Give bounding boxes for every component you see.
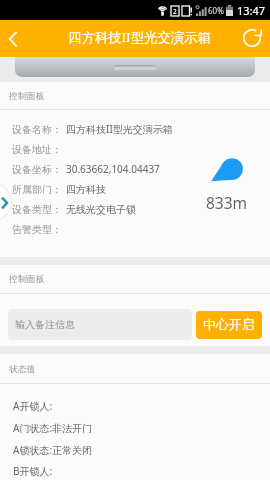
staticText: ： — [52, 163, 62, 176]
staticText: 30.63662,104.04437 — [66, 162, 160, 176]
staticText: 所属部门 — [12, 183, 52, 196]
staticText: 四方科技II型光交演示箱 — [66, 122, 173, 136]
staticText: 四方科技 — [66, 183, 106, 196]
staticText: ： — [52, 123, 62, 136]
button[interactable]: 输入备注信息 — [8, 309, 192, 340]
staticText: 设备类型 — [12, 203, 52, 216]
staticText: 设备名称 — [12, 123, 52, 136]
staticText: ： — [52, 223, 62, 236]
staticText: 设备坐标 — [12, 163, 52, 176]
staticText: 60% — [208, 5, 224, 16]
staticText: ： — [52, 183, 62, 196]
button[interactable]: Back — [0, 20, 34, 57]
staticText: 输入备注信息 — [15, 318, 75, 331]
staticText: 中心开启 — [203, 317, 255, 333]
staticText: 2 — [173, 7, 177, 16]
staticText: 设备地址 — [12, 143, 52, 156]
staticText: 状态值 — [9, 364, 36, 375]
staticText: ： — [52, 143, 62, 156]
staticText: 无线光交电子锁 — [66, 203, 136, 216]
staticText: ： — [52, 203, 62, 216]
staticText: A锁状态:正常关闭 — [13, 443, 93, 457]
staticText: B开锁人: — [13, 464, 53, 478]
staticText: 四方科技II型光交演示箱 — [68, 28, 211, 46]
button[interactable]: Expand side panel — [0, 183, 12, 221]
staticText: A门状态:非法开门 — [13, 421, 93, 435]
staticText: A开锁人: — [13, 399, 53, 413]
button[interactable]: 中心开启 — [196, 311, 262, 339]
button[interactable]: Refresh — [234, 20, 270, 57]
staticText: 控制面板 — [9, 91, 45, 102]
staticText: 告警类型 — [12, 223, 52, 236]
staticText: 833m — [206, 192, 248, 213]
staticText: 13:47 — [237, 3, 266, 18]
staticText: 控制面板 — [9, 274, 45, 285]
